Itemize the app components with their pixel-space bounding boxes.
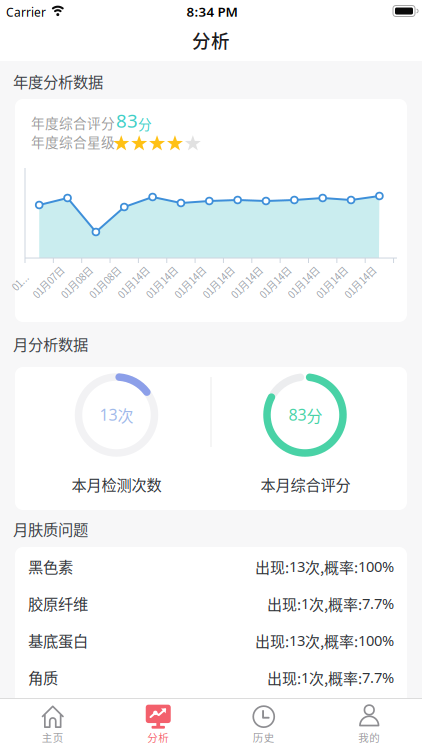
button[interactable]: 主页 [0, 700, 105, 750]
staticText: 01月14日 [227, 275, 267, 289]
button[interactable]: 我的 [316, 700, 422, 750]
staticText: 83分 [116, 108, 152, 133]
staticText: 历史 [253, 730, 275, 745]
staticText: 年度综合评分 [31, 112, 115, 132]
staticText: 01月14日 [114, 275, 154, 289]
staticText: 01... [11, 275, 30, 289]
staticText: 角质 [28, 666, 58, 688]
staticText: 分析 [192, 27, 230, 53]
staticText: 出现:1次,概率:7.7% [267, 593, 394, 614]
staticText: 01月14日 [284, 275, 324, 289]
staticText: 分析 [147, 730, 169, 745]
staticText: 月肤质问题 [13, 517, 88, 540]
staticText: 月分析数据 [13, 332, 88, 355]
staticText: 01月14日 [340, 275, 380, 289]
staticText: 8:34 PM [186, 3, 237, 20]
staticText: 13次 [99, 404, 133, 426]
staticText: 出现:13次,概率:100% [255, 556, 394, 577]
staticText: 01月08日 [85, 275, 125, 289]
staticText: 基底蛋白 [28, 629, 88, 651]
staticText: 主页 [42, 730, 64, 745]
staticText: 01月14日 [255, 275, 295, 289]
button[interactable]: 历史 [211, 700, 316, 750]
staticText: 01月14日 [170, 275, 210, 289]
staticText: 83分 [288, 404, 322, 426]
staticText: 01月14日 [199, 275, 239, 289]
staticText: 年度分析数据 [13, 70, 103, 92]
staticText: 黑色素 [28, 555, 73, 577]
staticText: 胶原纤维 [28, 592, 88, 614]
staticText: 本月综合评分 [260, 473, 350, 495]
staticText: 01月07日 [28, 275, 68, 289]
staticText: 年度综合星级 [31, 131, 115, 151]
staticText: 01月14日 [312, 275, 352, 289]
button[interactable]: 分析 [105, 700, 211, 750]
staticText: 本月检测次数 [71, 473, 161, 495]
staticText: 出现:13次,概率:100% [255, 630, 394, 651]
staticText: 我的 [358, 730, 380, 745]
staticText: 01月14日 [142, 275, 182, 289]
staticText: Carrier [6, 4, 46, 20]
staticText: 出现:1次,概率:7.7% [267, 667, 394, 688]
staticText: 01月08日 [57, 275, 97, 289]
